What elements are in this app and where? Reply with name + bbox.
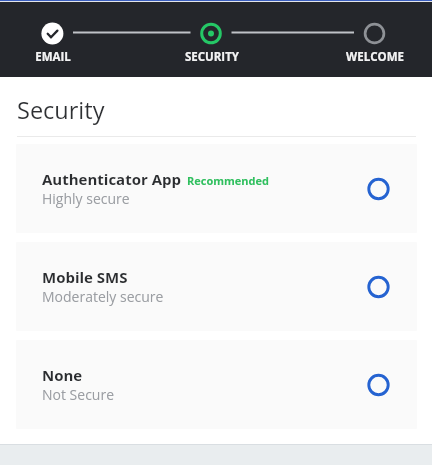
staticText: None	[42, 365, 83, 385]
button[interactable]: Select Mobile SMS	[357, 265, 401, 309]
button[interactable]: EMAIL	[0, 49, 133, 65]
staticText: Authenticator App	[42, 169, 181, 189]
staticText: Moderately secure	[42, 287, 164, 306]
staticText: EMAIL	[0, 49, 133, 65]
button[interactable]: None	[16, 340, 417, 429]
button[interactable]: Select Authenticator App	[357, 167, 401, 211]
staticText: WELCOME	[295, 49, 432, 65]
button[interactable]: WELCOME	[295, 49, 432, 65]
staticText: Recommended	[187, 173, 269, 188]
staticText: SECURITY	[132, 49, 292, 65]
staticText: Mobile SMS	[42, 267, 128, 287]
button[interactable]: Mobile SMS	[16, 242, 417, 331]
staticText: Security	[17, 94, 105, 126]
staticText: Highly secure	[42, 189, 130, 208]
staticText: Not Secure	[42, 385, 115, 404]
button[interactable]: Authenticator App	[16, 144, 417, 233]
button[interactable]: SECURITY	[132, 49, 292, 65]
button[interactable]: Select None	[357, 363, 401, 407]
